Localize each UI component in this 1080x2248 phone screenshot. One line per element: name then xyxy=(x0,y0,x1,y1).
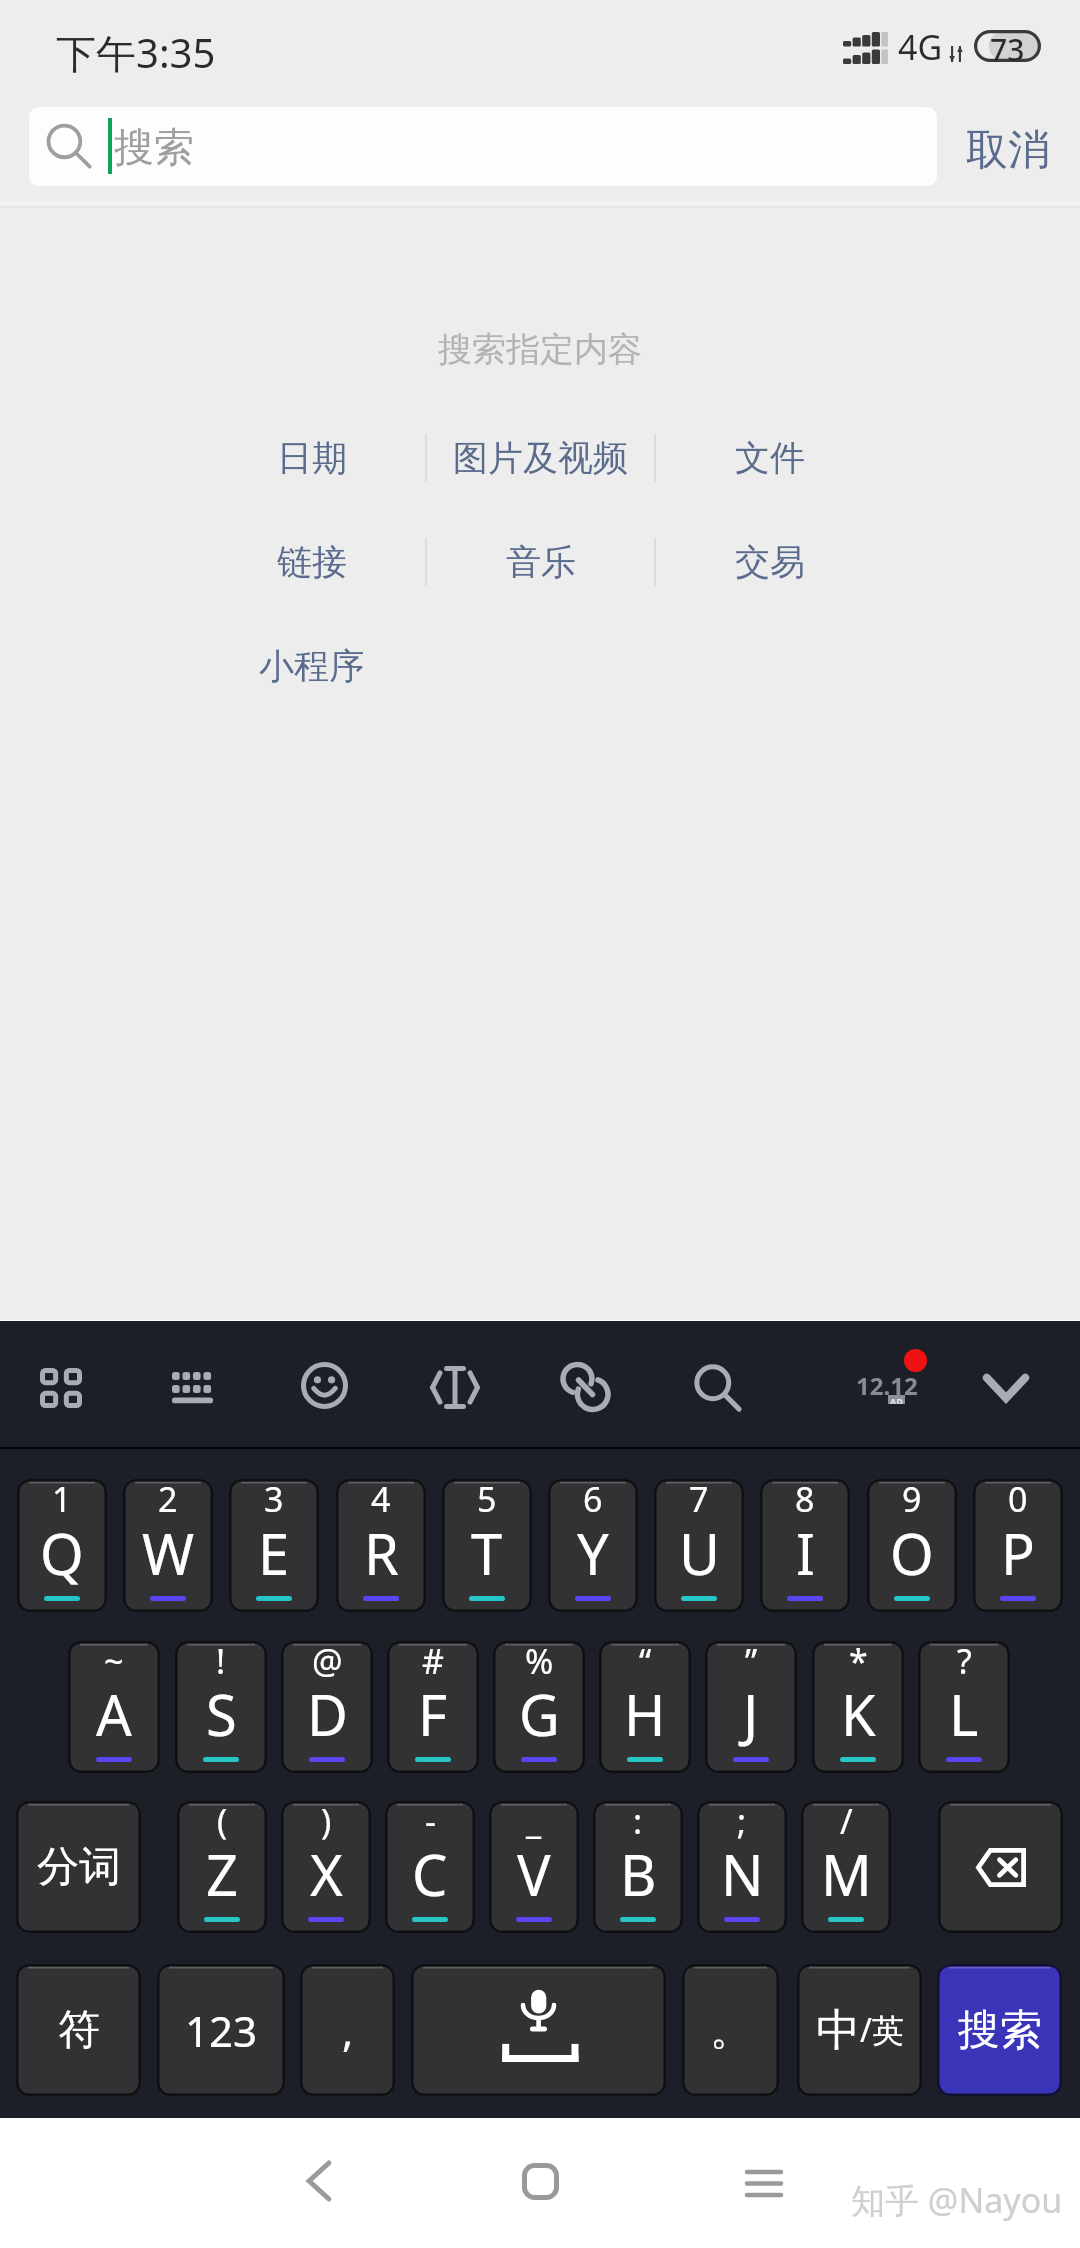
staticText: O xyxy=(890,1515,934,1591)
button[interactable]: Emoji xyxy=(258,1321,389,1476)
staticText: 文件 xyxy=(735,436,805,480)
button[interactable]: 小程序 xyxy=(197,634,426,698)
staticText: 2 xyxy=(158,1479,178,1522)
button[interactable]: 取消 xyxy=(952,107,1064,193)
staticText: 符 xyxy=(58,2004,100,2057)
staticText: 5 xyxy=(477,1479,497,1522)
staticText: C xyxy=(412,1836,448,1912)
staticText: 图片及视频 xyxy=(453,436,628,480)
button[interactable]: Space / voice input xyxy=(411,1964,666,2096)
button[interactable]: 1 xyxy=(17,1479,107,1612)
button[interactable]: 123 xyxy=(157,1964,285,2096)
button[interactable]: # xyxy=(387,1641,479,1773)
button[interactable]: Text selection xyxy=(390,1321,521,1476)
button[interactable]: Recents xyxy=(674,2118,854,2248)
button[interactable]: @ xyxy=(281,1641,373,1773)
button[interactable]: Hide keyboard xyxy=(943,1321,1080,1476)
staticText: B xyxy=(620,1836,657,1912)
button[interactable]: ” xyxy=(705,1641,797,1773)
button[interactable]: - xyxy=(385,1801,475,1933)
button[interactable]: 5 xyxy=(442,1479,532,1612)
button[interactable]: % xyxy=(493,1641,585,1773)
staticText: F xyxy=(418,1676,448,1752)
staticText: 取消 xyxy=(966,124,1050,177)
staticText: H xyxy=(624,1676,666,1752)
staticText: 123 xyxy=(185,2002,258,2059)
button[interactable]: 交易 xyxy=(655,530,884,594)
staticText: 搜索 xyxy=(114,122,194,172)
button[interactable]: Home xyxy=(450,2118,630,2248)
button[interactable]: ( xyxy=(177,1801,267,1933)
button[interactable]: 。 xyxy=(682,1964,779,2096)
staticText: Y xyxy=(577,1515,609,1591)
button[interactable]: Search xyxy=(652,1321,799,1476)
staticText: ~ xyxy=(104,1641,124,1684)
button[interactable]: 符 xyxy=(16,1964,141,2096)
staticText: , xyxy=(342,2002,354,2059)
button[interactable]: 中 xyxy=(797,1964,922,2096)
staticText: “ xyxy=(639,1641,652,1684)
staticText: 6 xyxy=(583,1479,603,1522)
staticText: ( xyxy=(217,1801,228,1844)
button[interactable]: 9 xyxy=(867,1479,957,1612)
button[interactable]: 0 xyxy=(973,1479,1063,1612)
button[interactable]: Clipboard xyxy=(521,1321,652,1476)
staticText: _ xyxy=(526,1801,542,1844)
staticText: - xyxy=(425,1801,436,1844)
button[interactable]: Backspace xyxy=(938,1801,1063,1933)
button[interactable]: / xyxy=(801,1801,891,1933)
button[interactable]: ) xyxy=(281,1801,371,1933)
button[interactable]: 7 xyxy=(654,1479,744,1612)
button[interactable]: ? xyxy=(918,1641,1010,1773)
staticText: 搜索指定内容 xyxy=(438,328,642,371)
button[interactable]: 链接 xyxy=(197,530,426,594)
staticText: R xyxy=(364,1515,399,1591)
button[interactable]: Keyboard xyxy=(127,1321,258,1476)
staticText: D xyxy=(307,1676,348,1752)
staticText: 下午3:35 xyxy=(56,25,216,80)
staticText: J xyxy=(743,1676,759,1752)
button[interactable]: Back xyxy=(230,2118,410,2248)
button[interactable]: 图片及视频 xyxy=(426,426,655,490)
button[interactable]: 搜索指定内容 xyxy=(438,328,642,371)
staticText: ) xyxy=(321,1801,332,1844)
button[interactable]: 6 xyxy=(548,1479,638,1612)
staticText: % xyxy=(525,1641,554,1684)
button[interactable]: 8 xyxy=(760,1479,850,1612)
button[interactable]: 音乐 xyxy=(426,530,655,594)
staticText: 音乐 xyxy=(506,540,576,584)
button[interactable]: ; xyxy=(697,1801,787,1933)
button[interactable]: 搜索 xyxy=(29,107,937,186)
button[interactable]: “ xyxy=(599,1641,691,1773)
staticText: @ xyxy=(312,1641,343,1684)
button[interactable]: Panels xyxy=(0,1321,127,1476)
button[interactable]: 3 xyxy=(229,1479,319,1612)
button[interactable]: : xyxy=(593,1801,683,1933)
button[interactable]: 搜索 xyxy=(937,1964,1062,2096)
button[interactable]: , xyxy=(300,1964,395,2096)
staticText: 9 xyxy=(902,1479,922,1522)
button[interactable]: _ xyxy=(489,1801,579,1933)
button[interactable]: 日期 xyxy=(197,426,426,490)
staticText: M xyxy=(821,1836,872,1912)
staticText: * xyxy=(849,1641,868,1684)
button[interactable]: 12.12 promotion xyxy=(799,1321,943,1476)
button[interactable]: 文件 xyxy=(655,426,884,490)
staticText: 搜索 xyxy=(958,2004,1042,2057)
staticText: 小程序 xyxy=(259,644,364,688)
button[interactable]: ~ xyxy=(68,1641,160,1773)
button[interactable]: 分词 xyxy=(16,1801,141,1933)
staticText: 日期 xyxy=(277,436,347,480)
staticText: K xyxy=(841,1676,876,1752)
staticText: P xyxy=(1001,1515,1035,1591)
button[interactable]: * xyxy=(812,1641,904,1773)
staticText: ! xyxy=(216,1641,226,1684)
staticText: L xyxy=(949,1676,979,1752)
other: Backspace xyxy=(938,1801,1063,1933)
staticText: 12.12 xyxy=(856,1369,918,1402)
other: Space / voice input xyxy=(411,1964,666,2096)
button[interactable]: 4 xyxy=(336,1479,426,1612)
button[interactable]: 2 xyxy=(123,1479,213,1612)
staticText: 4G xyxy=(898,24,943,70)
button[interactable]: ! xyxy=(175,1641,267,1773)
